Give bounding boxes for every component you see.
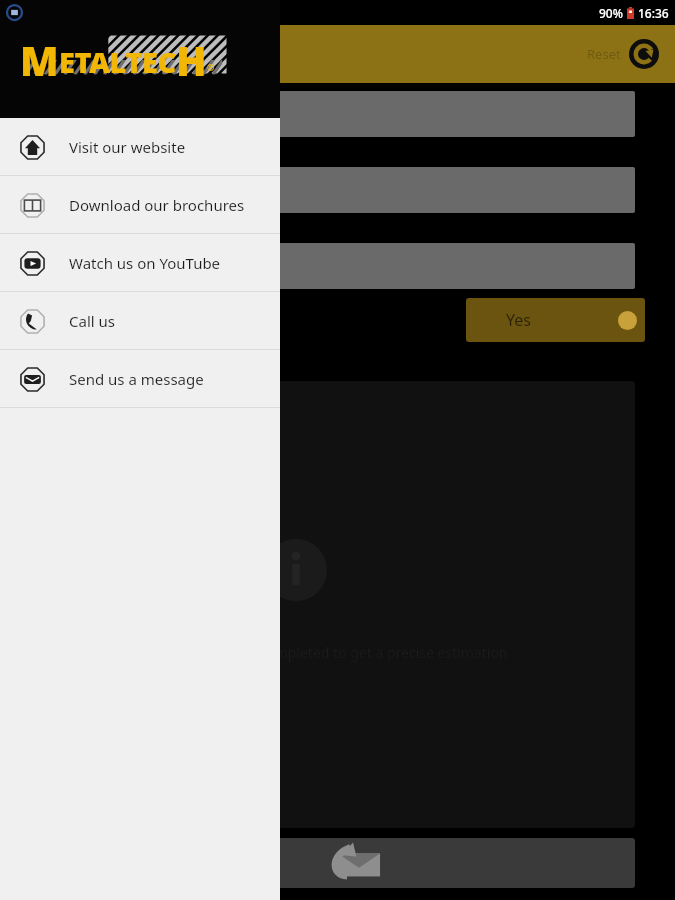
button[interactable]: Length (ft) bbox=[66, 167, 635, 213]
button[interactable] bbox=[0, 243, 56, 289]
staticText: All fields must be completed to get a pr… bbox=[143, 643, 508, 662]
button[interactable]: Call us bbox=[0, 292, 280, 349]
button[interactable]: Watch us on YouTube bbox=[0, 234, 280, 291]
button[interactable]: Platforms / deck bbox=[66, 243, 635, 289]
staticText: M bbox=[20, 33, 59, 85]
staticText: Visit our website bbox=[69, 137, 186, 157]
button[interactable]: Send us a message bbox=[0, 350, 280, 407]
staticText: Call us bbox=[69, 311, 115, 331]
button[interactable] bbox=[0, 167, 56, 213]
button[interactable]: Yes bbox=[466, 298, 645, 342]
button[interactable]: Visit our website bbox=[0, 118, 280, 175]
button[interactable] bbox=[0, 91, 56, 137]
staticText: Platforms bbox=[16, 222, 80, 240]
button[interactable]: Height (ft) bbox=[66, 91, 635, 137]
staticText: Platforms / deck bbox=[104, 255, 227, 277]
staticText: 90% bbox=[599, 5, 623, 21]
other: Reset bbox=[629, 39, 659, 69]
staticText: Download our brochures bbox=[69, 195, 245, 215]
staticText: Length (ft) bbox=[104, 179, 182, 201]
staticText: Required components bbox=[16, 356, 162, 375]
staticText: Reset bbox=[587, 45, 621, 63]
staticText: Braces bbox=[16, 146, 59, 164]
button[interactable]: Reset bbox=[583, 33, 663, 75]
staticText: SCAFFOLD CALCULATOR bbox=[16, 43, 214, 65]
staticText: 16:36 bbox=[638, 5, 669, 21]
button[interactable]: Download our brochures bbox=[0, 176, 280, 233]
staticText: Height (ft) bbox=[104, 103, 180, 125]
staticText: ETALTEC bbox=[59, 42, 176, 81]
staticText: Watch us on YouTube bbox=[69, 253, 221, 273]
staticText: Guardrails bbox=[16, 311, 89, 330]
button[interactable]: Send by email bbox=[66, 838, 635, 888]
staticText: ® bbox=[207, 61, 215, 73]
staticText: H bbox=[176, 33, 207, 85]
staticText: Yes bbox=[506, 309, 531, 331]
staticText: Send us a message bbox=[69, 369, 204, 389]
